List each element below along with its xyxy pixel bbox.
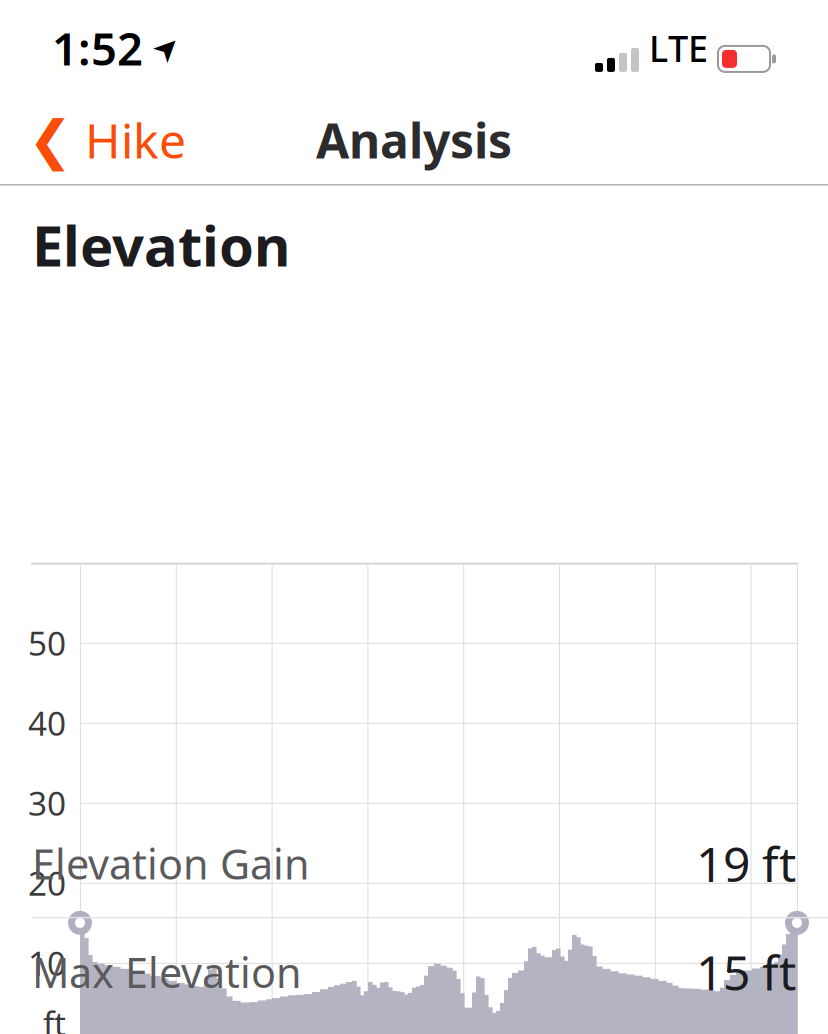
staticText: 50: [28, 621, 66, 665]
staticText: Max Elevation: [32, 944, 302, 999]
staticText: LTE: [649, 24, 708, 72]
staticText: Elevation Gain: [32, 836, 310, 891]
staticText: ➤: [153, 30, 180, 66]
staticText: Analysis: [316, 108, 512, 172]
staticText: 19 ft: [696, 831, 796, 895]
staticText: Elevation: [32, 207, 290, 282]
button[interactable]: ❮: [0, 96, 214, 184]
staticText: 40: [28, 701, 66, 745]
staticText: 1:52: [52, 18, 143, 78]
staticText: 10: [28, 941, 66, 985]
staticText: 20: [28, 861, 66, 905]
staticText: ❮: [28, 110, 73, 170]
staticText: 15 ft: [696, 940, 796, 1004]
staticText: ft: [43, 1001, 66, 1034]
staticText: 30: [28, 781, 66, 825]
staticText: Hike: [85, 108, 186, 172]
